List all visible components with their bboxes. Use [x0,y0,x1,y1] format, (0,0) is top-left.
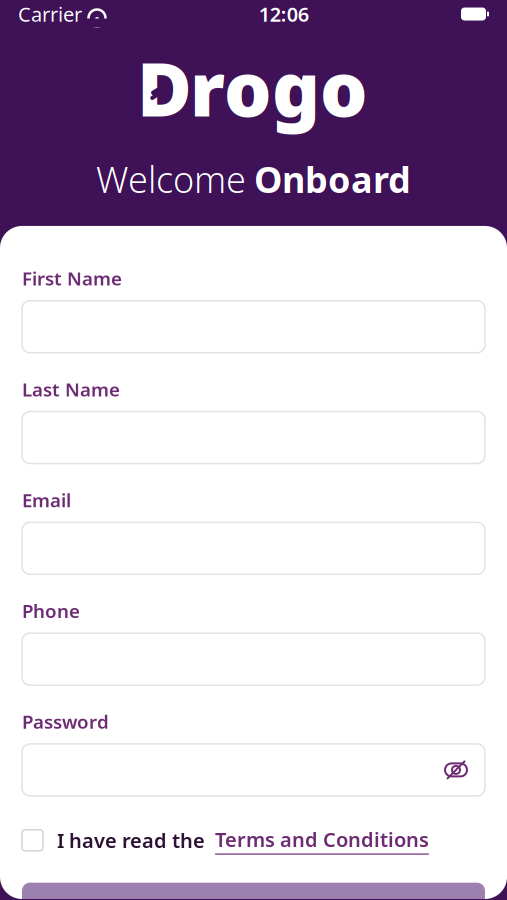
staticText: Last Name [22,377,120,402]
staticText: Password [22,709,109,734]
button[interactable]: Terms and Conditions [215,826,429,855]
staticText: Carrier [18,1,82,27]
staticText: Onboard [254,155,411,203]
button[interactable]: Show password [439,753,473,787]
button[interactable]: REGISTER [22,883,485,900]
staticText: D [137,38,192,137]
staticText: Welcome [96,155,246,203]
staticText: First Name [22,266,122,291]
staticText: 12:06 [259,1,309,27]
staticText: rogo [190,38,368,137]
staticText: Phone [22,598,80,623]
staticText: I have read the [57,827,205,854]
button[interactable]: I have read the Terms and Conditions [22,830,57,851]
staticText: REGISTER [204,896,303,900]
staticText: Email [22,487,71,512]
staticText: Terms and Conditions [215,826,429,852]
